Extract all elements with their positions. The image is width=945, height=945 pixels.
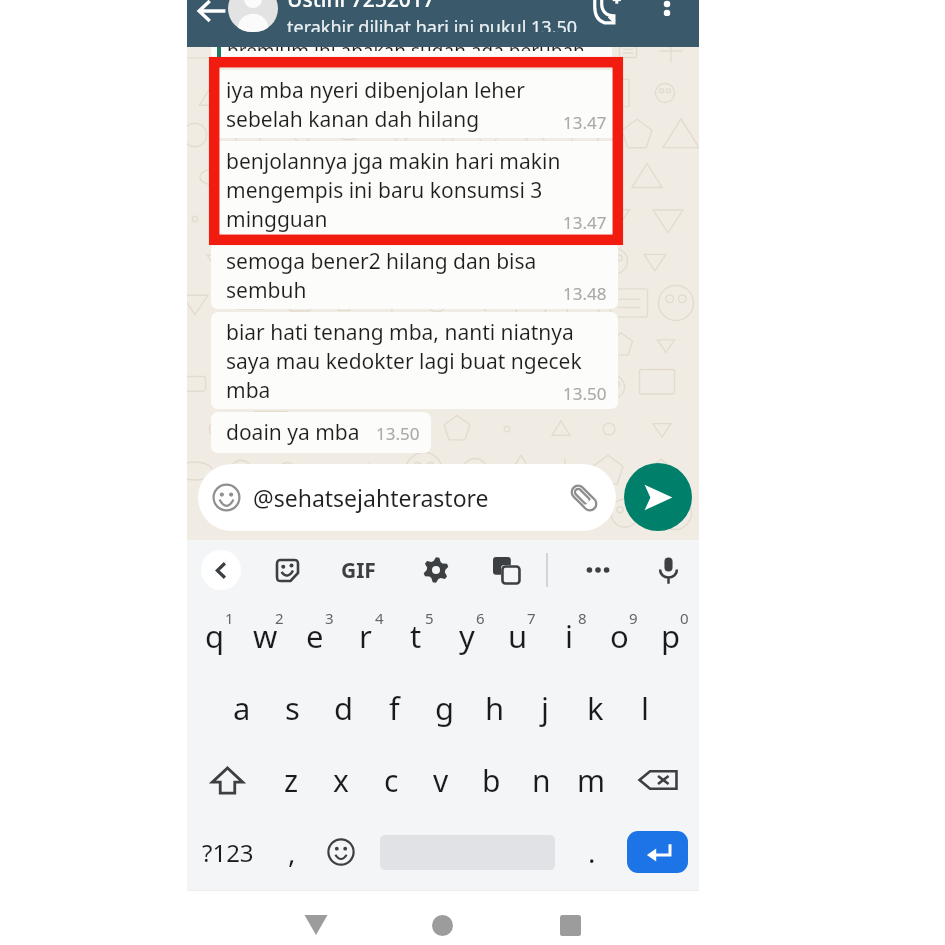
button[interactable]: Enter [627, 831, 688, 873]
button[interactable]: More options [651, 0, 683, 20]
button[interactable]: a [216, 672, 267, 744]
staticText: biar hati tenang mba, nanti niatnya [226, 318, 574, 347]
staticText: 6 [476, 608, 485, 628]
button[interactable]: p [645, 600, 696, 672]
staticText: 4 [375, 608, 384, 628]
staticText: mba [226, 376, 271, 405]
staticText: 13.50 [563, 382, 607, 405]
button[interactable]: y [441, 600, 492, 672]
button[interactable]: Shift [187, 744, 267, 816]
staticText: k [587, 687, 604, 729]
button[interactable]: r [340, 600, 390, 672]
button[interactable]: Home [424, 907, 460, 943]
staticText: 13.48 [563, 282, 607, 305]
staticText: sebelah kanan dah hilang [226, 105, 480, 134]
button[interactable]: Back [298, 907, 334, 943]
button[interactable]: b [466, 744, 516, 816]
staticText: i [565, 615, 573, 657]
staticText: 1 [225, 608, 234, 628]
button[interactable]: ?123 [187, 816, 269, 888]
staticText: z [284, 760, 299, 801]
button[interactable]: benjolannya jga makin hari makin [211, 141, 618, 238]
staticText: benjolannya jga makin hari makin [226, 147, 561, 176]
staticText: n [532, 760, 551, 801]
staticText: a [233, 687, 251, 729]
staticText: r [359, 615, 372, 657]
button[interactable]: j [520, 672, 570, 744]
button[interactable]: Send [624, 463, 692, 531]
staticText: j [541, 687, 549, 729]
button[interactable]: x [316, 744, 366, 816]
staticText: s [285, 687, 300, 729]
staticText: q [205, 615, 225, 657]
staticText: 8 [578, 608, 587, 628]
staticText: mingguan [226, 205, 328, 234]
button[interactable]: s [267, 672, 318, 744]
button[interactable]: i [543, 600, 594, 672]
staticText: , [288, 833, 296, 871]
staticText: o [610, 615, 629, 657]
button[interactable]: f [369, 672, 420, 744]
staticText: terakhir dilihat hari ini pukul 13.50 [287, 15, 578, 32]
staticText: . [588, 833, 596, 871]
button[interactable]: Stickers [270, 553, 304, 587]
button[interactable]: @sehatsejahterastore [198, 464, 616, 531]
button[interactable]: . [573, 816, 611, 888]
button[interactable]: Translate [489, 553, 523, 587]
button[interactable]: Backspace [616, 744, 699, 816]
staticText: e [306, 615, 324, 657]
button[interactable]: d [318, 672, 369, 744]
button[interactable]: t [390, 600, 441, 672]
staticText: c [384, 760, 399, 801]
staticText: doain ya mba [226, 418, 360, 447]
button[interactable]: g [420, 672, 470, 744]
button[interactable]: z [267, 744, 316, 816]
button[interactable]: biar hati tenang mba, nanti niatnya [211, 312, 618, 409]
staticText: 7 [527, 608, 536, 628]
staticText: 5 [425, 608, 434, 628]
button[interactable]: Video call [587, 0, 627, 29]
button[interactable]: h [470, 672, 520, 744]
staticText: Ustini 7252017 [287, 0, 435, 14]
button[interactable]: u [492, 600, 543, 672]
button[interactable]: Emoji [315, 816, 367, 888]
button[interactable]: m [566, 744, 616, 816]
button[interactable]: k [570, 672, 620, 744]
button[interactable]: Recents [552, 907, 588, 943]
button[interactable]: Back [201, 550, 241, 590]
staticText: 13.47 [563, 211, 607, 234]
button[interactable]: n [516, 744, 566, 816]
staticText: saya mau kedokter lagi buat ngecek [226, 347, 582, 376]
button[interactable]: , [269, 816, 315, 888]
staticText: m [577, 760, 606, 801]
staticText: v [433, 760, 449, 801]
staticText: x [333, 760, 349, 801]
button[interactable]: l [620, 672, 670, 744]
button[interactable]: GIF [341, 556, 376, 585]
button[interactable]: semoga bener2 hilang dan bisa [211, 241, 618, 309]
button[interactable]: w [240, 600, 290, 672]
button[interactable]: doain ya mba [211, 412, 431, 453]
staticText: g [435, 687, 455, 729]
staticText: h [485, 687, 505, 729]
staticText: t [410, 615, 422, 657]
button[interactable]: q [190, 600, 240, 672]
button[interactable]: v [416, 744, 466, 816]
button[interactable]: Voice input [651, 553, 685, 587]
staticText: u [508, 615, 528, 657]
button[interactable]: o [594, 600, 645, 672]
staticText: b [482, 760, 501, 801]
staticText: w [253, 615, 278, 657]
button[interactable]: iya mba nyeri dibenjolan leher [211, 70, 618, 138]
staticText: d [334, 687, 354, 729]
button[interactable]: Back [192, 0, 232, 31]
button[interactable]: Settings [419, 553, 453, 587]
button[interactable]: More [581, 553, 615, 587]
button[interactable]: c [366, 744, 416, 816]
staticText: 13.47 [563, 111, 607, 134]
button[interactable]: e [290, 600, 340, 672]
staticText: f [389, 687, 400, 729]
staticText: 2 [275, 608, 284, 628]
staticText: premium ini apakah sudah ada perubah [227, 47, 585, 51]
